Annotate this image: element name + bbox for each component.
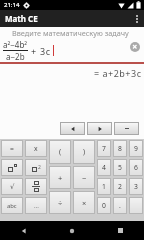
staticText: ÷ <box>58 198 63 208</box>
staticText: ... <box>34 202 39 210</box>
staticText: 8 <box>118 144 122 153</box>
staticText: Введите математическую задачу <box>12 28 129 38</box>
button[interactable] <box>88 123 111 134</box>
button[interactable]: ( <box>50 141 70 163</box>
staticText: √ <box>10 183 15 191</box>
staticText: abc <box>7 202 17 210</box>
button[interactable] <box>26 179 46 194</box>
staticText: + 3c <box>28 45 51 57</box>
button[interactable]: 9 <box>130 141 142 156</box>
button[interactable]: = <box>2 141 22 156</box>
button[interactable]: x <box>26 141 46 156</box>
staticText: 9 <box>134 144 138 153</box>
staticText: 6 <box>134 163 138 172</box>
staticText: × <box>82 198 87 208</box>
button[interactable]: abc <box>2 198 22 213</box>
staticText: = a+2b+3c <box>94 67 142 79</box>
staticText: 3 <box>134 182 138 191</box>
staticText: . <box>119 201 121 210</box>
button[interactable] <box>2 160 22 175</box>
button[interactable]: + <box>50 167 70 188</box>
button[interactable]: 3 <box>130 179 142 194</box>
button[interactable]: − <box>74 167 94 188</box>
staticText: a²−4b² <box>3 39 28 50</box>
staticText: − <box>82 173 87 183</box>
staticText: a−2b <box>6 51 25 62</box>
button[interactable] <box>115 123 138 134</box>
button[interactable]: 4 <box>98 160 110 175</box>
button[interactable]: 8 <box>114 141 126 156</box>
button[interactable]: 2 <box>26 160 46 175</box>
button[interactable]: ... <box>26 198 46 213</box>
button[interactable]: ÷ <box>50 192 70 213</box>
button[interactable] <box>61 123 84 134</box>
button[interactable] <box>0 221 48 240</box>
staticText: 21:14 <box>4 1 20 9</box>
staticText: + <box>58 173 63 183</box>
button[interactable]: 0 <box>98 198 110 213</box>
button[interactable]: √ <box>2 179 22 194</box>
button[interactable]: 5 <box>114 160 126 175</box>
button[interactable]: × <box>74 192 94 213</box>
button[interactable]: 6 <box>130 160 142 175</box>
button[interactable] <box>48 221 96 240</box>
staticText: 7 <box>102 144 106 153</box>
staticText: Math CE <box>5 13 38 24</box>
button[interactable] <box>96 221 144 240</box>
staticText: 0 <box>102 201 106 210</box>
button[interactable]: 7 <box>98 141 110 156</box>
staticText: 5 <box>118 163 122 172</box>
staticText: 2 <box>38 164 41 171</box>
button[interactable]: 1 <box>98 179 110 194</box>
staticText: ) <box>83 147 86 157</box>
staticText: = <box>10 144 14 153</box>
button[interactable]: ) <box>74 141 94 163</box>
staticText: 4 <box>102 163 106 172</box>
button[interactable]: 2 <box>114 179 126 194</box>
staticText: x <box>34 144 38 153</box>
button[interactable]: . <box>114 198 126 213</box>
button[interactable] <box>136 15 138 23</box>
staticText: 1 <box>102 182 106 191</box>
button[interactable] <box>130 198 142 213</box>
staticText: 2 <box>118 182 122 191</box>
button[interactable] <box>130 42 140 52</box>
staticText: ( <box>59 147 62 157</box>
